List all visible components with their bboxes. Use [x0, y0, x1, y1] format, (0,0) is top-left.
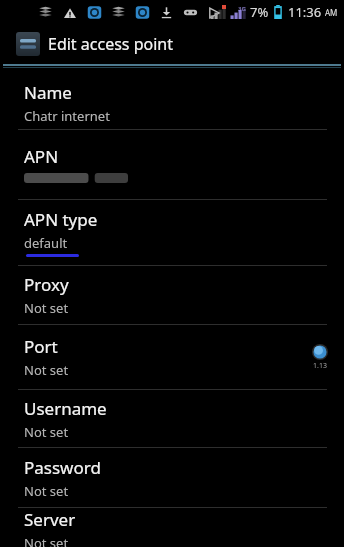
staticText: Edit access point: [48, 33, 173, 55]
button[interactable]: Username: [0, 390, 344, 447]
other: Access point icon: [16, 32, 40, 56]
button[interactable]: APN: [0, 130, 344, 199]
button[interactable]: Password: [0, 448, 344, 507]
staticText: Username: [24, 397, 107, 420]
staticText: APN type: [24, 208, 98, 231]
staticText: AM: [325, 7, 338, 18]
staticText: default: [24, 234, 68, 252]
button[interactable]: APN type: [0, 200, 344, 265]
button[interactable]: Port: [0, 325, 344, 389]
staticText: Name: [24, 81, 72, 104]
staticText: Not set: [24, 361, 69, 379]
button[interactable]: Proxy: [0, 266, 344, 324]
staticText: 3G: [238, 5, 246, 13]
staticText: Not set: [24, 423, 69, 441]
staticText: Port: [24, 335, 58, 358]
staticText: Chatr internet: [24, 107, 110, 125]
button[interactable]: Access point icon: [0, 24, 344, 64]
staticText: 11:36: [288, 3, 322, 21]
staticText: Server: [24, 508, 76, 531]
button[interactable]: Name: [0, 77, 344, 129]
staticText: Password: [24, 456, 101, 479]
other: Floating widget: [312, 344, 328, 360]
staticText: APN: [24, 145, 59, 168]
button[interactable]: Server: [0, 508, 344, 547]
staticText: Proxy: [24, 273, 69, 296]
staticText: Not set: [24, 482, 69, 500]
staticText: Not set: [24, 534, 69, 547]
staticText: Not set: [24, 299, 69, 317]
staticText: 7%: [250, 3, 269, 21]
staticText: 1.13: [313, 361, 327, 371]
